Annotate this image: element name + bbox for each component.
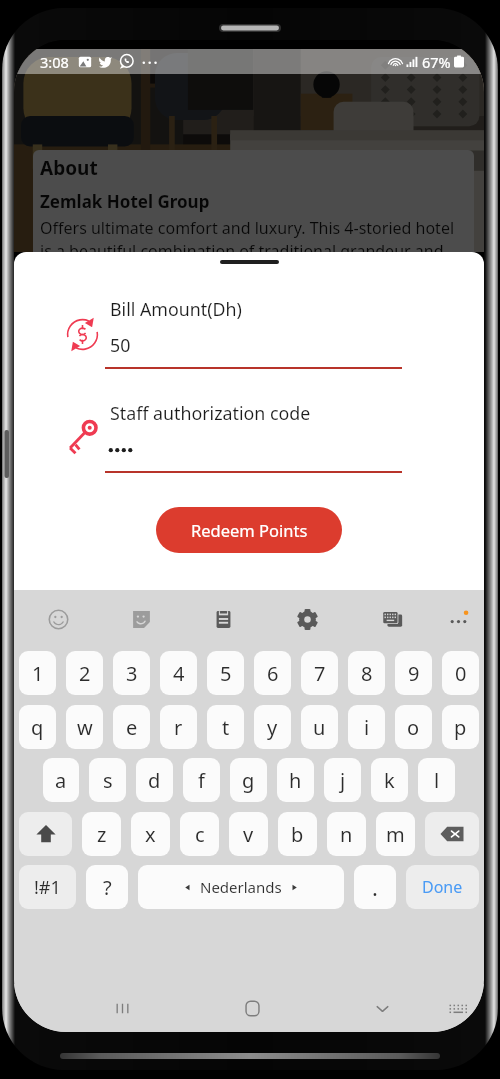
button[interactable]: Switch keyboard [436,987,478,1029]
button[interactable]: Home [231,987,273,1029]
button[interactable]: x [131,812,170,856]
staticText: Redeem Points [191,519,308,541]
staticText: o [407,714,420,741]
button[interactable]: 6 [254,651,291,695]
staticText: d [148,767,161,794]
staticText: g [242,767,255,794]
button[interactable]: Bill amount [65,317,100,352]
staticText: s [103,767,113,794]
staticText: h [289,767,302,794]
button[interactable]: q [19,705,56,749]
staticText: Nederlands [200,877,282,897]
button[interactable]: Clipboard [206,602,240,636]
staticText: c [195,821,205,848]
button[interactable]: n [327,812,366,856]
staticText: p [454,714,467,741]
button[interactable]: 3 [113,651,150,695]
button[interactable]: 5 [207,651,244,695]
button[interactable]: w [66,705,103,749]
button[interactable]: Emoji [41,602,75,636]
staticText: v [243,821,254,848]
button[interactable]: a [43,758,79,802]
staticText: 8 [361,660,373,687]
button[interactable]: Recents [101,987,143,1029]
button[interactable]: Authorization code [65,415,107,457]
staticText: z [97,821,107,848]
staticText: !#1 [34,875,61,900]
button[interactable]: 4 [160,651,197,695]
button[interactable]: Stickers [124,602,158,636]
button[interactable]: y [254,705,291,749]
button[interactable]: z [82,812,121,856]
button[interactable]: 9 [395,651,432,695]
button[interactable]: Done [406,865,479,909]
staticText: About [40,155,98,181]
staticText: l [434,767,440,794]
staticText: 6 [267,660,279,687]
button[interactable]: v [229,812,268,856]
button[interactable]: Redeem Points [156,507,342,553]
staticText: Zemlak Hotel Group [40,190,210,213]
button[interactable]: 8 [348,651,385,695]
button[interactable]: ? [86,865,128,909]
button[interactable]: Settings [290,602,324,636]
staticText: 50 [110,333,131,357]
button[interactable]: 0 [442,651,479,695]
button[interactable]: p [442,705,479,749]
button[interactable]: Nederlands [138,865,344,909]
staticText: . [372,872,378,902]
staticText: e [126,714,138,741]
staticText: j [340,767,346,794]
button[interactable]: Backspace [425,812,479,856]
staticText: Done [422,876,463,898]
button[interactable]: r [160,705,197,749]
staticText: q [31,714,44,741]
button[interactable]: Shift [19,812,72,856]
button[interactable]: k [371,758,408,802]
button[interactable]: e [113,705,150,749]
staticText: 7 [314,660,326,687]
staticText: 9 [408,660,420,687]
button[interactable]: . [354,865,396,909]
button[interactable]: b [278,812,317,856]
staticText: f [198,767,205,794]
button[interactable]: c [180,812,219,856]
button[interactable]: l [418,758,455,802]
button[interactable]: u [301,705,338,749]
staticText: b [291,821,304,848]
button[interactable]: More [441,602,475,636]
staticText: u [313,714,326,741]
staticText: 5 [220,660,232,687]
staticText: k [384,767,395,794]
staticText: ? [103,874,112,901]
button[interactable]: 1 [19,651,56,695]
button[interactable]: !#1 [19,865,76,909]
staticText: n [340,821,353,848]
staticText: 67% [422,52,451,72]
button[interactable]: 2 [66,651,103,695]
button[interactable]: i [348,705,385,749]
button[interactable]: m [376,812,415,856]
staticText: a [55,767,67,794]
button[interactable]: Keyboard mode [375,602,409,636]
button[interactable]: g [230,758,267,802]
button[interactable]: s [89,758,126,802]
button[interactable]: h [277,758,314,802]
button[interactable]: f [183,758,220,802]
button[interactable]: o [395,705,432,749]
staticText: 4 [173,660,185,687]
staticText: 3 [126,660,138,687]
staticText: 2 [79,660,91,687]
staticText: w [77,714,93,741]
staticText: 1 [32,660,44,687]
button[interactable]: Hide keyboard [361,987,403,1029]
staticText: r [174,714,183,741]
button[interactable]: d [136,758,173,802]
staticText: Offers ultimate comfort and luxury. This… [40,217,464,252]
staticText: t [222,714,230,741]
button[interactable]: t [207,705,244,749]
button[interactable]: 7 [301,651,338,695]
staticText: m [386,821,405,848]
button[interactable]: j [324,758,361,802]
staticText: i [364,714,370,741]
